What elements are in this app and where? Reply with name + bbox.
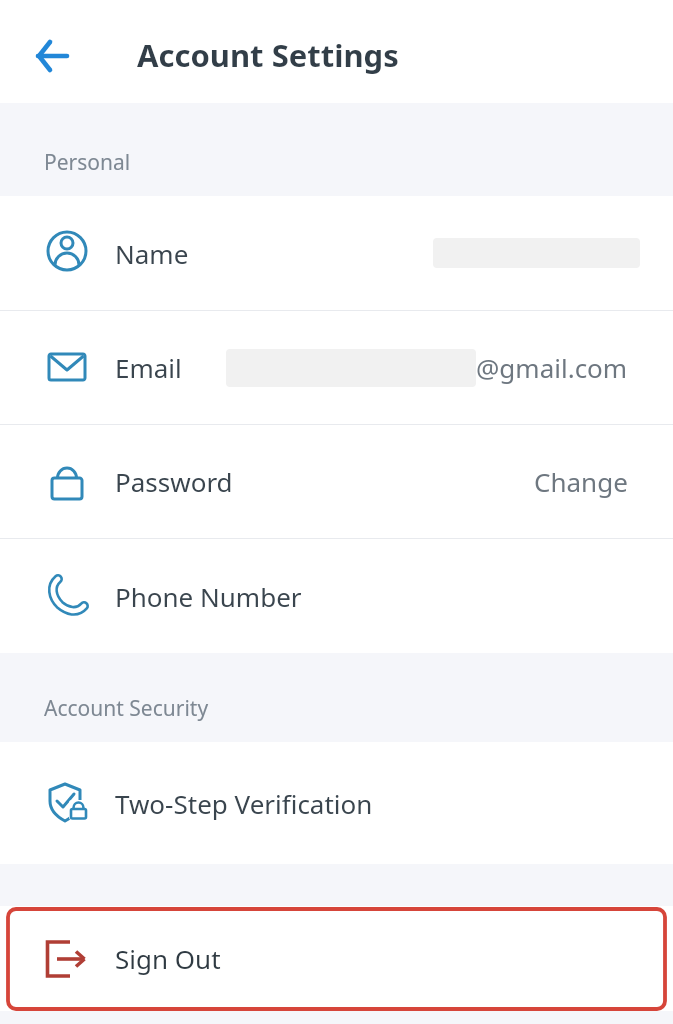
button[interactable]: Email [0, 311, 673, 424]
staticText: Change [534, 464, 628, 499]
staticText: Account Settings [137, 34, 399, 76]
button[interactable] [34, 36, 74, 76]
staticText: @gmail.com [476, 350, 628, 385]
staticText: Sign Out [115, 941, 221, 976]
staticText: Email [115, 350, 182, 385]
staticText: Personal [44, 148, 131, 177]
button[interactable]: Password [0, 425, 673, 538]
staticText: Phone Number [115, 579, 302, 614]
button[interactable]: Phone Number [0, 539, 673, 653]
button[interactable]: Name [0, 196, 673, 310]
button[interactable]: Sign Out [0, 906, 673, 1011]
staticText: Account Security [44, 694, 209, 723]
button[interactable]: Two-Step Verification [0, 742, 673, 864]
staticText: Name [115, 236, 189, 271]
staticText: Password [115, 464, 233, 499]
staticText: Two-Step Verification [115, 786, 373, 821]
